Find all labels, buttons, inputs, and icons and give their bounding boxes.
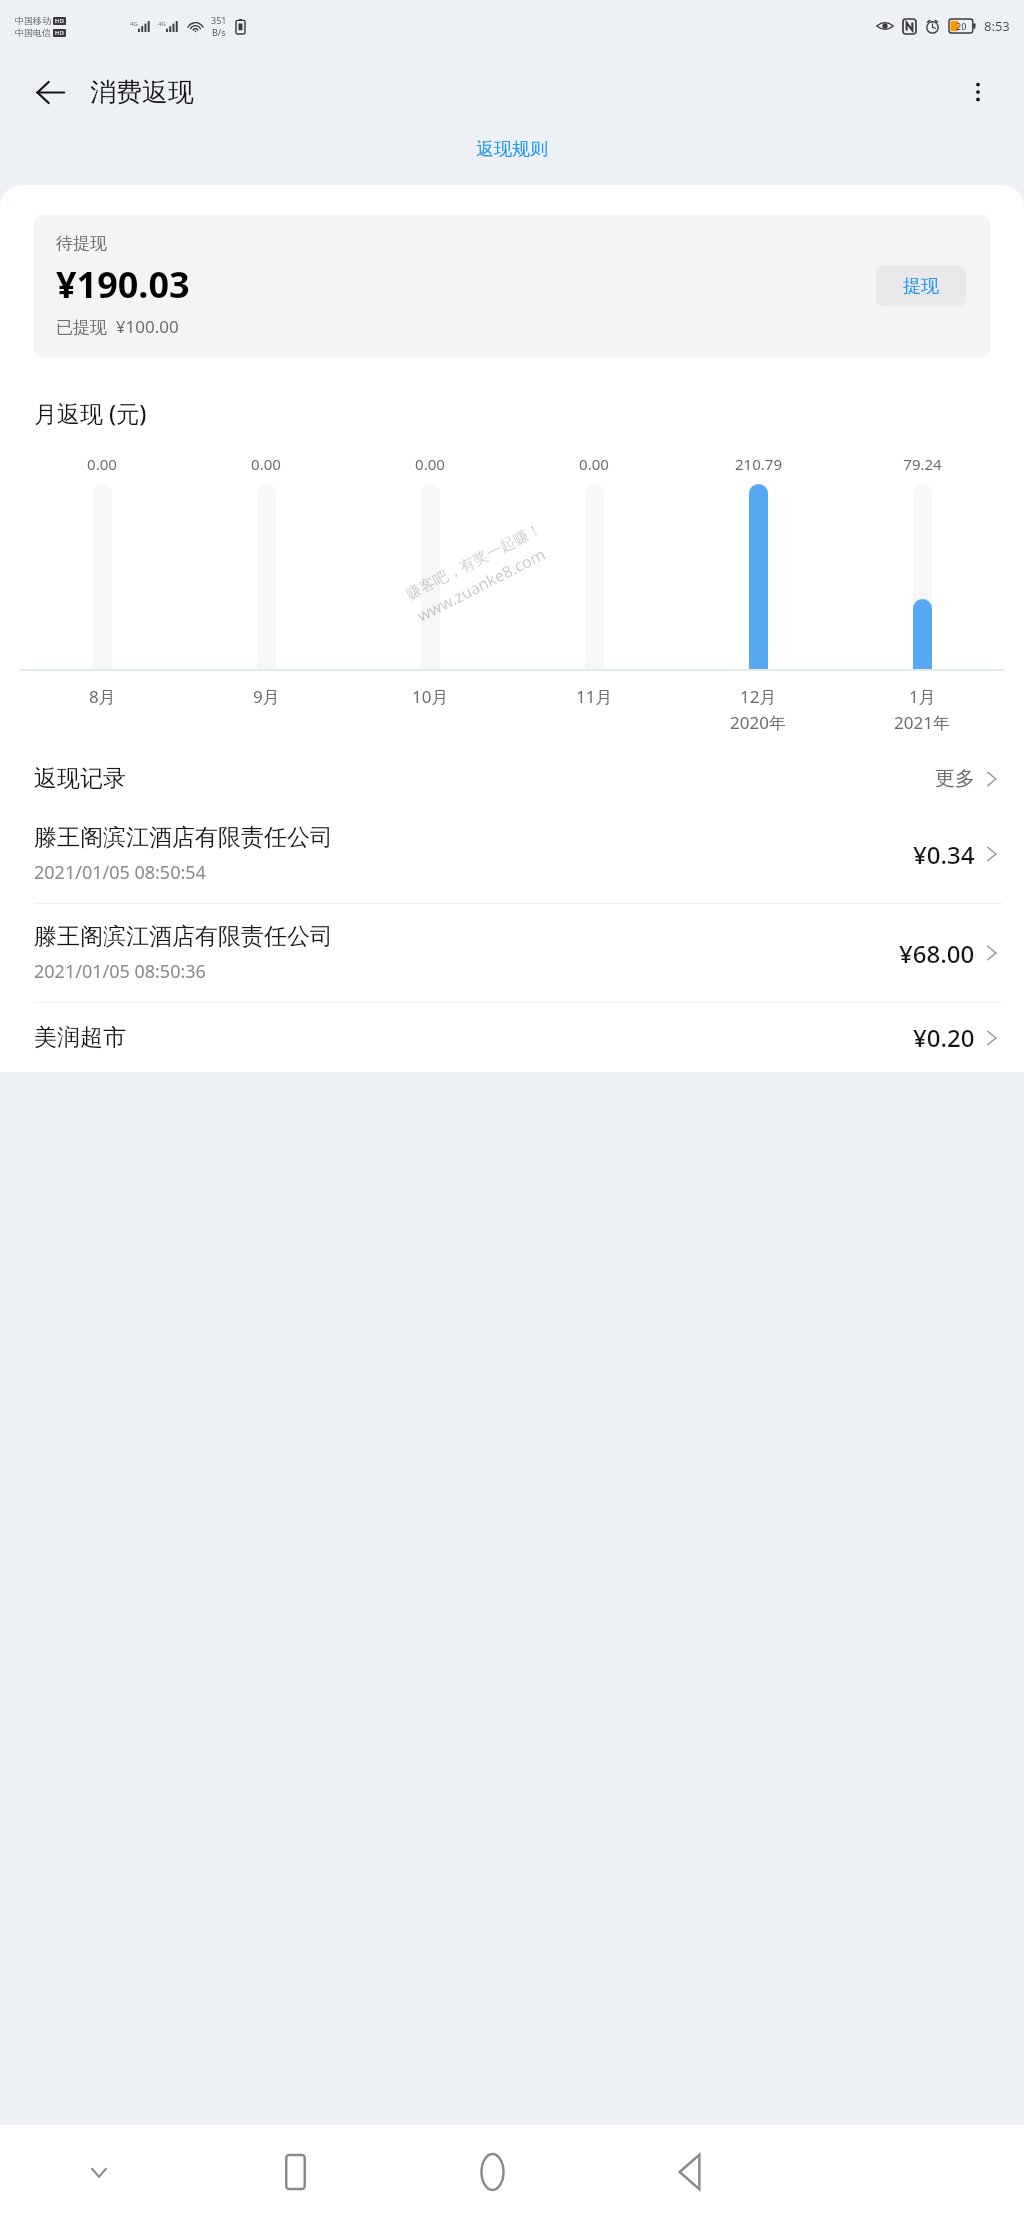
staticText: 0.00 [579,454,609,474]
button[interactable]: More options [952,66,1004,118]
button[interactable]: 美润超市 [0,1003,1024,1072]
staticText: HD [55,17,64,25]
staticText: 美润超市 [34,1023,126,1052]
staticText: ¥0.20 [913,1021,975,1054]
staticText: 中国电信 [15,27,51,38]
staticText: 4G [158,20,166,28]
button[interactable]: 返现规则 [462,132,562,167]
button[interactable]: Home [394,2125,591,2219]
staticText: ¥0.34 [913,838,975,871]
staticText: 更多 [935,766,975,791]
staticText: 2020年 [730,711,786,734]
button[interactable]: 返现记录 [0,748,1024,805]
staticText: HD [55,29,64,37]
button[interactable]: 提现 [876,266,966,306]
staticText: 2021/01/05 08:50:54 [34,860,206,885]
staticText: 提现 [903,275,939,298]
staticText: 8月 [89,685,116,708]
staticText: 返现记录 [34,764,126,793]
staticText: ¥190.03 [56,260,190,309]
staticText: 210.79 [735,454,782,474]
staticText: 4G [130,20,138,28]
staticText: 8:53 [984,17,1010,35]
staticText: 已提现 ¥100.00 [56,315,179,338]
button[interactable]: Back [591,2125,788,2219]
button[interactable]: Back [24,66,76,118]
staticText: 9月 [253,685,280,708]
staticText: 12月 [740,685,777,708]
staticText: www.zuanke8.com [413,543,549,627]
staticText: 10月 [412,685,449,708]
staticText: 返现规则 [476,138,548,161]
staticText: 月返现 (元) [34,397,147,428]
staticText: 2021/01/05 08:50:36 [34,959,206,984]
staticText: 1月 [909,685,936,708]
staticText: 20 [956,20,967,32]
button[interactable]: Recent apps [197,2125,394,2219]
staticText: 79.24 [903,454,942,474]
staticText: 351 [211,14,227,26]
staticText: 0.00 [415,454,445,474]
staticText: 11月 [576,685,613,708]
button[interactable]: 滕王阁滨江酒店有限责任公司 [0,805,1024,904]
staticText: ¥68.00 [899,937,975,970]
staticText: 滕王阁滨江酒店有限责任公司 [34,823,333,852]
staticText: 0.00 [87,454,117,474]
staticText: B/s [212,26,226,38]
staticText: 消费返现 [90,76,194,109]
staticText: 2021年 [894,711,950,734]
staticText: 中国移动 [15,15,51,26]
button[interactable]: Hide keyboard [0,2125,197,2219]
staticText: 滕王阁滨江酒店有限责任公司 [34,922,333,951]
staticText: 0.00 [251,454,281,474]
staticText: 待提现 [56,233,107,254]
button[interactable]: 滕王阁滨江酒店有限责任公司 [0,904,1024,1003]
staticText: 赚客吧，有奖一起赚！ [403,519,545,604]
